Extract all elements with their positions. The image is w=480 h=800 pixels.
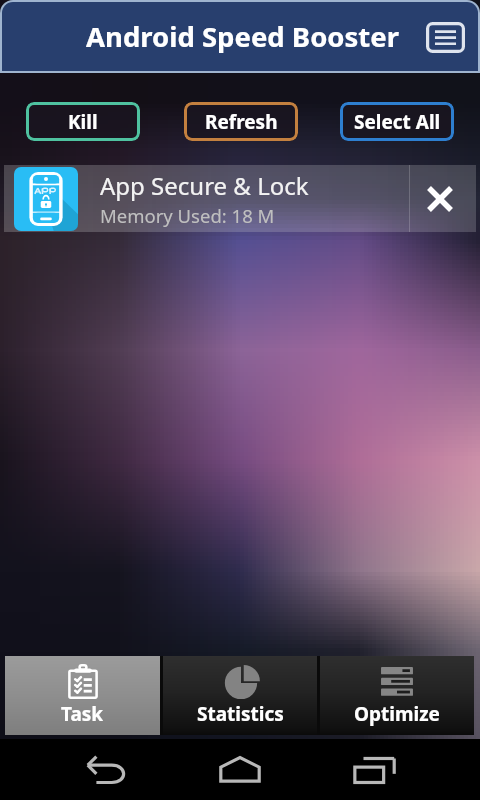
staticText: Statistics xyxy=(197,701,284,727)
button[interactable]: Home xyxy=(211,741,269,799)
staticText: Android Speed Booster xyxy=(86,18,399,55)
staticText: Task xyxy=(61,701,104,727)
button[interactable]: Statistics xyxy=(163,656,317,735)
staticText: Optimize xyxy=(354,701,440,727)
button[interactable]: Close xyxy=(404,165,476,232)
button[interactable]: Kill xyxy=(26,102,140,141)
staticText: Refresh xyxy=(205,109,278,135)
staticText: App Secure & Lock xyxy=(100,169,309,202)
staticText: Kill xyxy=(68,109,98,135)
button[interactable]: Select All xyxy=(340,102,454,141)
button[interactable]: Menu xyxy=(426,22,465,53)
button[interactable]: Refresh xyxy=(184,102,298,141)
button[interactable]: Back xyxy=(77,741,135,799)
button[interactable]: Task xyxy=(5,656,160,735)
staticText: Memory Used: 18 M xyxy=(100,203,275,228)
staticText: Select All xyxy=(354,109,441,135)
button[interactable]: Recents xyxy=(346,741,404,799)
button[interactable]: Optimize xyxy=(320,656,474,735)
button[interactable]: App Secure & Lock xyxy=(4,165,476,232)
